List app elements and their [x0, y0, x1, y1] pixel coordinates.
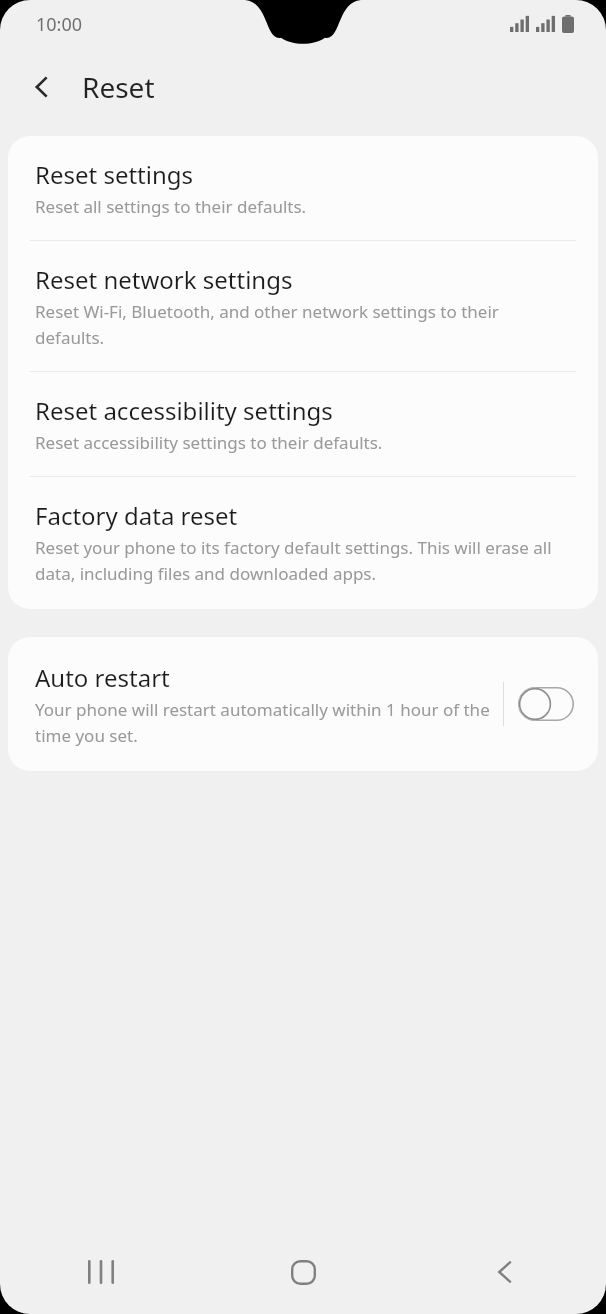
staticText: Reset accessibility settings to their de…: [35, 431, 383, 454]
button[interactable]: Back: [18, 63, 66, 111]
button[interactable]: Recents: [0, 1230, 202, 1314]
staticText: Reset: [82, 68, 155, 106]
button[interactable]: Back: [404, 1230, 606, 1314]
button[interactable]: Reset accessibility settings: [8, 372, 598, 476]
staticText: Your phone will restart automatically wi…: [35, 698, 503, 747]
staticText: Reset settings: [35, 158, 194, 191]
staticText: 10:00: [36, 12, 83, 37]
staticText: Reset your phone to its factory default …: [35, 536, 568, 585]
staticText: Reset accessibility settings: [35, 394, 333, 427]
staticText: Factory data reset: [35, 499, 238, 532]
staticText: Auto restart: [35, 661, 170, 694]
button[interactable]: Auto restart toggle: [518, 687, 574, 721]
button[interactable]: Home: [202, 1230, 404, 1314]
button[interactable]: Factory data reset: [8, 477, 598, 609]
button[interactable]: Reset settings: [8, 136, 598, 240]
button[interactable]: Auto restart: [8, 637, 598, 771]
staticText: Reset Wi-Fi, Bluetooth, and other networ…: [35, 300, 568, 349]
button[interactable]: Reset network settings: [8, 241, 598, 371]
staticText: Reset all settings to their defaults.: [35, 195, 307, 218]
staticText: Reset network settings: [35, 263, 293, 296]
